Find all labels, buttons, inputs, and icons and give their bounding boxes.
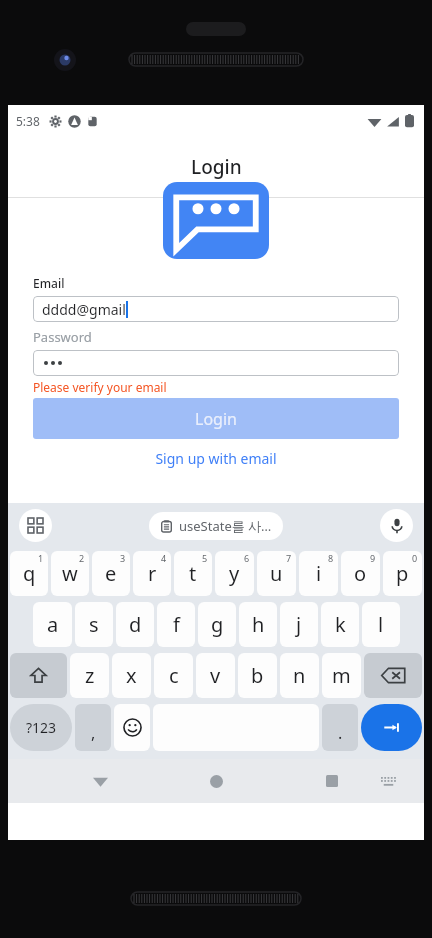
button[interactable]: l <box>362 602 400 647</box>
button[interactable]: Emoji <box>114 704 150 751</box>
button[interactable]: Login <box>33 398 399 439</box>
staticText: g <box>211 611 224 638</box>
button[interactable]: Sign up with email <box>33 449 399 468</box>
button[interactable]: k <box>321 602 359 647</box>
button[interactable]: w <box>51 551 89 596</box>
staticText: Login <box>195 408 237 430</box>
staticText: i <box>316 560 322 587</box>
button[interactable]: . <box>322 704 358 751</box>
staticText: w <box>62 560 78 587</box>
staticText: r <box>148 560 157 587</box>
button[interactable]: Back <box>83 764 117 798</box>
button[interactable] <box>33 350 399 376</box>
staticText: u <box>270 560 283 587</box>
staticText: c <box>169 662 179 689</box>
staticText: f <box>173 611 180 638</box>
button[interactable]: c <box>154 653 193 698</box>
staticText: y <box>229 560 240 587</box>
button[interactable]: g <box>198 602 236 647</box>
button[interactable]: z <box>70 653 109 698</box>
staticText: dddd@gmail <box>42 300 126 319</box>
staticText: q <box>23 560 36 587</box>
staticText: 8 <box>328 552 334 564</box>
staticText: z <box>85 662 95 689</box>
button[interactable]: o <box>341 551 380 596</box>
button[interactable]: Switch keyboard <box>374 767 402 795</box>
staticText: 6 <box>244 552 250 564</box>
staticText: Login <box>191 154 242 180</box>
button[interactable]: x <box>112 653 151 698</box>
staticText: 4 <box>161 552 167 564</box>
staticText: Password <box>33 328 92 346</box>
staticText: h <box>252 611 265 638</box>
staticText: k <box>335 611 346 638</box>
staticText: 3 <box>120 552 126 564</box>
staticText: x <box>126 662 137 689</box>
staticText: j <box>296 611 302 638</box>
staticText: v <box>210 662 221 689</box>
staticText: 7 <box>286 552 292 564</box>
staticText: n <box>293 662 306 689</box>
staticText: Sign up with email <box>155 449 277 468</box>
staticText: m <box>332 662 351 689</box>
staticText: l <box>378 611 384 638</box>
staticText: 0 <box>412 552 418 564</box>
button[interactable]: u <box>257 551 296 596</box>
staticText: b <box>251 662 264 689</box>
button[interactable]: r <box>133 551 171 596</box>
button[interactable]: Voice input <box>380 509 413 542</box>
staticText: s <box>89 611 99 638</box>
button[interactable]: a <box>33 602 72 647</box>
staticText: 5:38 <box>16 113 40 129</box>
staticText: Please verify your email <box>33 379 167 395</box>
button[interactable]: m <box>322 653 361 698</box>
staticText: , <box>91 722 96 744</box>
button[interactable]: q <box>10 551 48 596</box>
button[interactable]: Shift <box>10 653 67 698</box>
button[interactable]: v <box>196 653 235 698</box>
button[interactable]: h <box>239 602 277 647</box>
button[interactable]: Home <box>199 764 233 798</box>
button[interactable]: s <box>75 602 113 647</box>
button[interactable]: n <box>280 653 319 698</box>
button[interactable]: f <box>157 602 195 647</box>
button[interactable]: b <box>238 653 277 698</box>
button[interactable]: p <box>383 551 422 596</box>
button[interactable]: dddd@gmail <box>33 296 399 322</box>
staticText: p <box>396 560 409 587</box>
button[interactable]: Enter <box>361 704 422 751</box>
staticText: 1 <box>38 552 44 564</box>
button[interactable]: d <box>116 602 154 647</box>
button[interactable]: Recents <box>315 764 349 798</box>
button[interactable]: Keyboard modes <box>19 509 52 542</box>
button[interactable]: j <box>280 602 318 647</box>
staticText: e <box>105 560 117 587</box>
staticText: Email <box>33 275 65 291</box>
button[interactable]: , <box>75 704 111 751</box>
button[interactable]: i <box>299 551 338 596</box>
staticText: 9 <box>370 552 376 564</box>
button[interactable]: Backspace <box>364 653 422 698</box>
staticText: d <box>129 611 142 638</box>
staticText: ?123 <box>26 718 57 737</box>
button[interactable]: ?123 <box>10 704 72 751</box>
staticText: t <box>189 560 197 587</box>
button[interactable]: t <box>174 551 212 596</box>
staticText: . <box>338 722 343 744</box>
button[interactable]: y <box>215 551 254 596</box>
staticText: 5 <box>202 552 208 564</box>
staticText: a <box>47 611 59 638</box>
button[interactable]: e <box>92 551 130 596</box>
staticText: 2 <box>79 552 85 564</box>
staticText: useState를 사… <box>179 517 272 535</box>
staticText: o <box>354 560 367 587</box>
button[interactable]: useState를 사… <box>149 512 283 540</box>
